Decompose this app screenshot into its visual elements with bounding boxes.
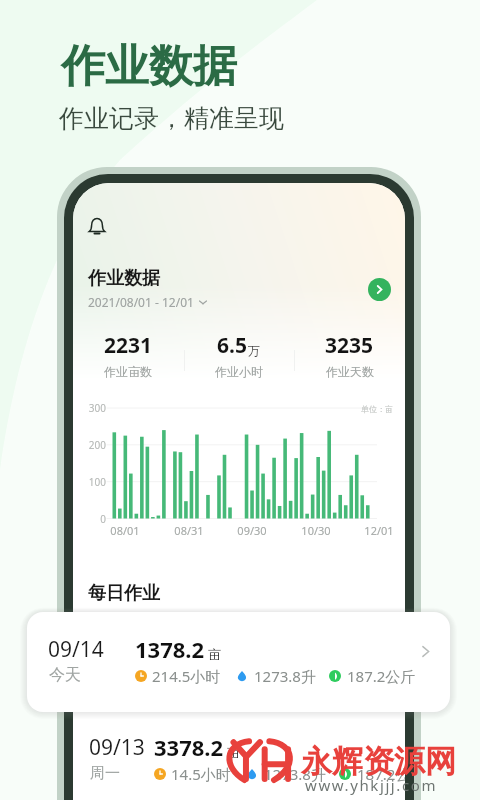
- button[interactable]: 09/14: [27, 612, 450, 712]
- staticText: 亩: [208, 646, 221, 662]
- staticText: 1378.2: [135, 634, 205, 664]
- button[interactable]: 09/13: [89, 716, 405, 800]
- staticText: 187.2公斤: [347, 666, 416, 686]
- staticText: 作业天数: [326, 364, 374, 379]
- staticText: 300: [84, 401, 106, 415]
- staticText: 09/30: [232, 523, 272, 538]
- staticText: 12/01: [359, 523, 399, 538]
- staticText: 200: [84, 438, 106, 452]
- staticText: 作业数据: [88, 267, 160, 290]
- staticText: 作业数据: [61, 39, 237, 94]
- staticText: 09/13: [89, 733, 145, 762]
- staticText: 08/01: [105, 523, 145, 538]
- staticText: 万: [248, 343, 260, 358]
- staticText: 6.5: [217, 331, 247, 360]
- button[interactable]: View details: [368, 278, 391, 301]
- staticText: 100: [84, 475, 106, 489]
- staticText: 2021/08/01 - 12/01: [88, 294, 194, 310]
- staticText: 作业小时: [215, 364, 263, 379]
- button[interactable]: Notifications: [82, 211, 112, 241]
- staticText: 214.5小时: [152, 666, 221, 686]
- staticText: 周一: [90, 764, 120, 783]
- staticText: 单位：亩: [361, 404, 393, 414]
- staticText: 永辉资源网: [301, 742, 456, 781]
- staticText: 3378.2: [154, 732, 224, 762]
- button[interactable]: 2021/08/01 - 12/01: [88, 294, 208, 310]
- button[interactable]: 3235: [294, 331, 405, 379]
- staticText: 2231: [104, 331, 153, 360]
- button[interactable]: 2231: [73, 331, 183, 379]
- staticText: 1273.8升: [264, 764, 326, 784]
- staticText: 09/14: [48, 635, 104, 664]
- staticText: 0: [84, 512, 106, 526]
- staticText: 亩: [227, 744, 240, 760]
- staticText: 作业记录，精准呈现: [59, 103, 284, 134]
- staticText: 14.5小时: [171, 764, 231, 784]
- button[interactable]: 6.5: [183, 331, 294, 379]
- staticText: 08/31: [169, 523, 209, 538]
- staticText: 每日作业: [88, 582, 160, 605]
- staticText: 187.2公斤: [357, 764, 405, 784]
- staticText: www.yhkjjj.com: [305, 775, 438, 795]
- staticText: 3235: [325, 331, 374, 360]
- staticText: 今天: [49, 665, 81, 685]
- staticText: 作业亩数: [104, 364, 152, 379]
- staticText: 10/30: [296, 523, 336, 538]
- staticText: 1273.8升: [254, 666, 316, 686]
